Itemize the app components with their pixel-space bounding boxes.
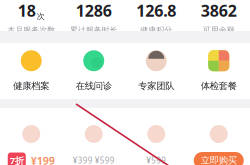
staticText: 18 [18,0,36,21]
button[interactable]: 专家团队 [125,50,187,92]
staticText: ¥599 [146,155,166,165]
staticText: 可用余额 [203,25,235,35]
button[interactable]: 在线问诊 [62,50,125,92]
button[interactable]: 3862 [187,0,250,35]
staticText: 累计服务时长 [70,25,118,35]
staticText: 1286 [76,0,112,21]
button[interactable]: ¥399 ¥599 [62,108,125,165]
staticText: ¥199 [31,153,55,165]
button[interactable]: 1286 [62,0,125,35]
staticText: 126.8 [136,0,176,21]
staticText: 在线问诊 [76,80,112,92]
button[interactable]: 126.8 [125,0,187,35]
staticText: 立即购买 [201,155,237,165]
staticText: 7折 [10,154,24,165]
staticText: 本月服务次数 [7,25,55,35]
staticText: 次 [37,11,45,21]
staticText: 专家团队 [138,80,174,92]
button[interactable]: 18 [0,0,62,35]
staticText: ¥399 ¥599 [73,155,115,165]
button[interactable]: 7折 [0,108,62,165]
button[interactable]: ¥599 [125,108,187,165]
button[interactable]: 健康档案 [0,50,62,92]
button[interactable]: 立即购买 [187,108,250,165]
staticText: 健康档案 [13,80,49,92]
button[interactable]: 体检套餐 [187,50,250,92]
staticText: 体检套餐 [201,80,237,92]
staticText: 健康积分 [140,25,172,35]
staticText: 3862 [201,0,237,21]
